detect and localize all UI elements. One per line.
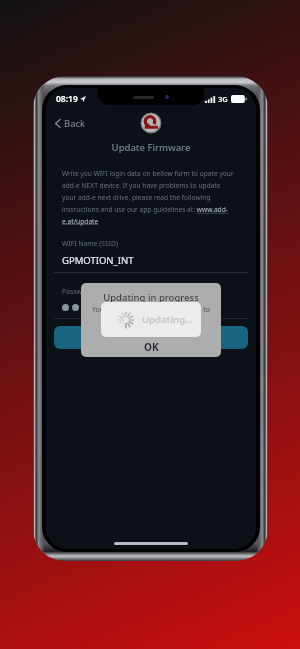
staticText: You have to wait about 5 minutes to xyxy=(81,305,221,315)
staticText: Back xyxy=(64,117,86,130)
staticText: 3G xyxy=(218,94,228,104)
staticText: WIFI Name (SSID) xyxy=(62,239,118,248)
staticText: Write you WIFI login data on bellow form… xyxy=(62,169,234,226)
staticText: Password xyxy=(62,287,93,296)
staticText: Updating... xyxy=(142,313,193,326)
button[interactable] xyxy=(54,326,248,349)
staticText: 08:19 xyxy=(56,93,78,105)
staticText: GPMOTION_INT xyxy=(62,254,134,267)
button[interactable]: OK xyxy=(81,337,221,357)
staticText: Update Firmware xyxy=(46,141,256,154)
staticText: Updating in progress xyxy=(81,291,221,304)
staticText: OK xyxy=(144,340,159,354)
button[interactable]: Back xyxy=(46,117,92,130)
